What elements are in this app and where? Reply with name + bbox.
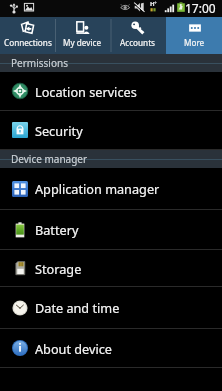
staticText: About device [35,340,112,357]
staticText: 17:00 [185,0,216,16]
button[interactable]: Date and time [0,287,222,329]
staticText: Permissions [11,56,68,70]
staticText: Battery [35,221,79,238]
button[interactable]: Accounts [110,17,166,54]
staticText: Accounts [120,37,156,48]
staticText: Application manager [35,180,160,197]
staticText: + [154,0,157,7]
button[interactable]: More [166,17,222,54]
button[interactable]: About device [0,329,222,368]
button[interactable]: Application manager [0,168,222,210]
staticText: My device [63,37,102,48]
staticText: Location services [35,83,137,100]
staticText: Security [35,122,83,139]
staticText: Connections [4,37,52,48]
button[interactable]: Storage [0,250,222,287]
button[interactable]: Location services [0,72,222,111]
button[interactable]: Battery [0,210,222,250]
staticText: H [150,0,155,8]
staticText: Device manager [11,152,88,166]
button[interactable]: My device [55,17,110,54]
staticText: Storage [35,260,82,277]
button[interactable]: Connections [0,17,55,54]
staticText: Date and time [35,299,120,316]
staticText: More [184,37,205,48]
button[interactable]: Security [0,111,222,150]
